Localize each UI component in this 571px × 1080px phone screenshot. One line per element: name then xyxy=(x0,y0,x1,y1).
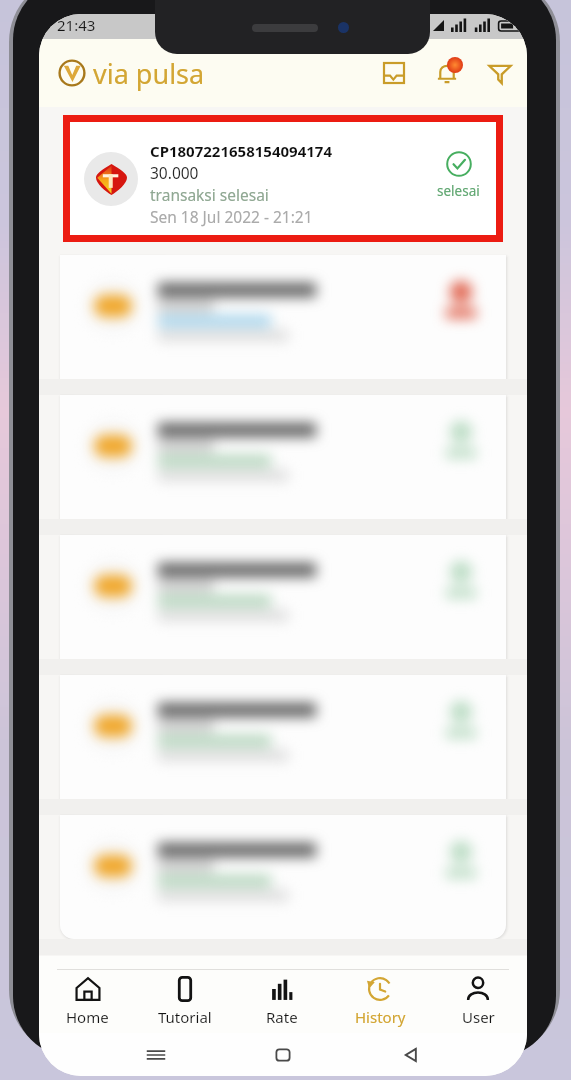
staticText: via pulsa xyxy=(93,55,205,92)
button[interactable]: History xyxy=(331,970,429,1033)
staticText: Rate xyxy=(266,1007,298,1027)
staticText: transaksi selesai xyxy=(150,184,269,205)
button[interactable]: Home xyxy=(39,970,136,1033)
button[interactable]: Tutorial xyxy=(136,970,233,1033)
button[interactable] xyxy=(60,395,506,519)
button[interactable]: CP1807221658154094174 xyxy=(70,122,496,235)
other: Back xyxy=(400,1044,422,1066)
button[interactable]: Notifications xyxy=(428,54,466,92)
staticText: Sen 18 Jul 2022 - 21:21 xyxy=(150,206,313,227)
staticText: History xyxy=(355,1007,406,1027)
button[interactable] xyxy=(60,675,506,799)
button[interactable]: Filter xyxy=(481,54,519,92)
button[interactable]: User xyxy=(429,970,527,1033)
other: Home xyxy=(272,1044,294,1066)
button[interactable] xyxy=(60,255,506,379)
button[interactable]: Inbox xyxy=(375,54,413,92)
staticText: User xyxy=(462,1007,495,1027)
staticText: selesai xyxy=(437,182,480,200)
other: Recents xyxy=(145,1044,167,1066)
button[interactable]: Rate xyxy=(233,970,331,1033)
button[interactable] xyxy=(60,535,506,659)
staticText: Tutorial xyxy=(158,1007,212,1027)
staticText: 21:43 xyxy=(57,15,96,35)
button[interactable] xyxy=(60,815,506,939)
staticText: Home xyxy=(66,1007,109,1027)
staticText: 30.000 xyxy=(150,162,199,183)
staticText: CP1807221658154094174 xyxy=(150,141,332,161)
